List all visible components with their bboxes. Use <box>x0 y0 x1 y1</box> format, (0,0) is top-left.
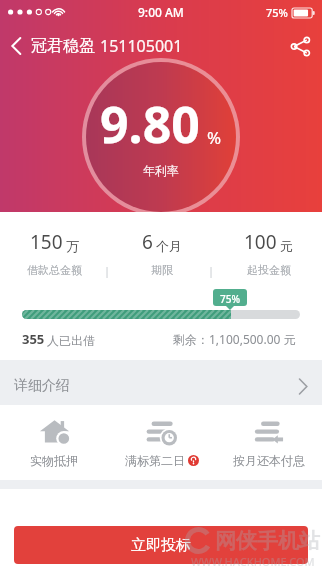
staticText: 详细介绍 <box>14 377 70 395</box>
staticText: 151105001 <box>100 35 183 57</box>
staticText: 150 <box>30 229 63 255</box>
button[interactable]: 满标第二日 <box>108 417 215 470</box>
staticText: 万 <box>66 238 79 254</box>
staticText: 6 <box>142 229 153 255</box>
staticText: 人已出借 <box>47 333 95 348</box>
staticText: 立即投标 <box>131 536 191 555</box>
staticText: | <box>104 263 111 278</box>
button[interactable]: 实物抵押 <box>0 417 108 470</box>
staticText: 元 <box>280 238 293 254</box>
button[interactable]: Back <box>0 27 31 65</box>
staticText: 起投金额 <box>247 263 291 277</box>
staticText: 借款总金额 <box>27 263 82 277</box>
staticText: 实物抵押 <box>30 453 78 468</box>
staticText: 网侠手机站 <box>215 528 320 554</box>
staticText: 100 <box>244 229 277 255</box>
staticText: 9:00 AM <box>138 4 184 20</box>
staticText: 年利率 <box>143 163 179 178</box>
staticText: 个月 <box>156 238 182 254</box>
staticText: | <box>208 263 215 278</box>
button[interactable]: 立即投标 <box>14 526 308 564</box>
staticText: 期限 <box>151 263 173 277</box>
staticText: WWW.HACKHOME.COM <box>191 554 315 569</box>
staticText: % <box>207 126 222 149</box>
staticText: 满标第二日 <box>125 453 185 468</box>
staticText: 按月还本付息 <box>233 453 305 468</box>
staticText: 剩余：1,100,500.00 元 <box>173 331 296 347</box>
staticText: 9.80 <box>100 90 200 158</box>
staticText: 75% <box>220 292 240 306</box>
button[interactable]: 详细介绍 <box>0 367 322 405</box>
button[interactable]: 按月还本付息 <box>215 417 322 470</box>
staticText: 75% <box>266 5 288 20</box>
staticText: 355 <box>22 330 45 348</box>
staticText: 冠君稳盈 <box>31 36 95 56</box>
button[interactable]: Share <box>279 26 322 67</box>
